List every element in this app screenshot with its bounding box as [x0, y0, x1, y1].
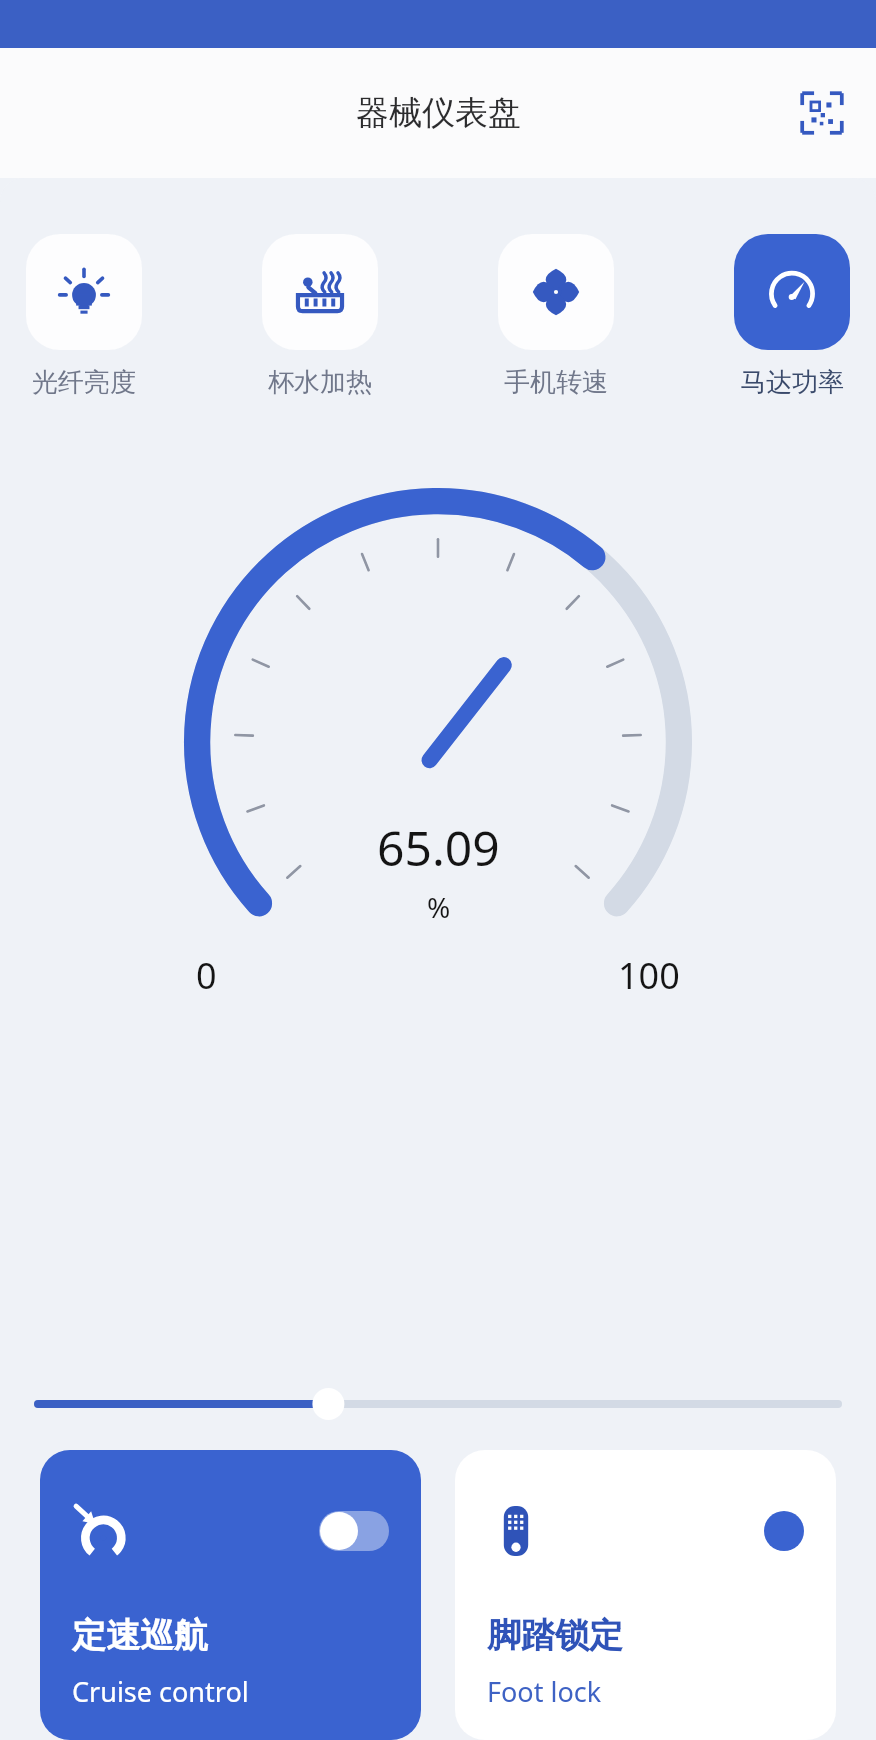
staticText: 器械仪表盘 — [356, 92, 521, 134]
staticText: 0 — [196, 951, 217, 1000]
button[interactable]: Cruise control toggle — [319, 1511, 389, 1551]
staticText: 杯水加热 — [268, 366, 372, 399]
button[interactable]: Foot lock toggle — [455, 1450, 836, 1740]
button[interactable]: Value slider — [38, 1382, 838, 1426]
staticText: 光纤亮度 — [32, 366, 136, 399]
button[interactable]: Scan QR code — [792, 83, 852, 143]
button[interactable]: Cruise control toggle — [40, 1450, 421, 1740]
button[interactable]: 手机转速 — [498, 234, 614, 399]
staticText: 定速巡航 — [72, 1614, 208, 1657]
button[interactable]: 杯水加热 — [262, 234, 378, 399]
button[interactable]: 光纤亮度 — [26, 234, 142, 399]
staticText: Foot lock — [487, 1673, 602, 1710]
staticText: 100 — [618, 951, 680, 1000]
staticText: 65.09 — [377, 815, 500, 880]
staticText: 手机转速 — [504, 366, 608, 399]
staticText: 马达功率 — [740, 366, 844, 399]
staticText: % — [427, 888, 451, 926]
button[interactable]: Foot lock toggle — [764, 1511, 804, 1551]
staticText: Cruise control — [72, 1673, 249, 1710]
button[interactable]: 马达功率 — [734, 234, 850, 399]
staticText: 脚踏锁定 — [487, 1614, 623, 1657]
